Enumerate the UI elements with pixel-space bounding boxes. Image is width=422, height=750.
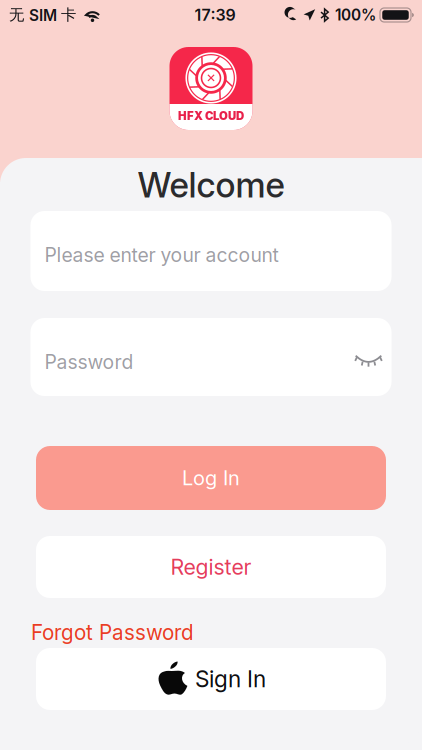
staticText: Please enter your account <box>44 243 278 267</box>
staticText: Welcome <box>137 164 284 206</box>
staticText: Sign In <box>195 665 266 693</box>
button[interactable]: Show password <box>347 338 389 375</box>
button[interactable]: Forgot Password <box>31 617 391 642</box>
button[interactable]: Register <box>36 536 386 598</box>
staticText: 100% <box>335 6 376 24</box>
button[interactable]: Sign In <box>36 648 386 710</box>
staticText: HFX CLOUD <box>178 109 244 123</box>
button[interactable]: Log In <box>36 446 386 510</box>
staticText: Password <box>44 350 133 374</box>
staticText: Forgot Password <box>31 620 194 645</box>
staticText: 17:39 <box>194 5 235 25</box>
staticText: Register <box>170 554 251 580</box>
staticText: ✕ <box>206 71 216 85</box>
staticText: Log In <box>182 466 240 490</box>
staticText: 无 SIM 卡 <box>9 5 76 25</box>
